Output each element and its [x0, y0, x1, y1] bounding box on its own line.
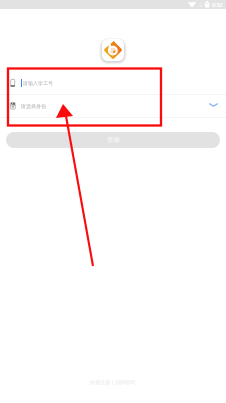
staticText: 请输入学工号 — [23, 80, 53, 86]
staticText: 9:52 — [212, 1, 223, 8]
staticText: 登录 — [107, 136, 120, 144]
button[interactable]: 登录 — [6, 132, 220, 148]
other: Expand — [208, 101, 219, 112]
button[interactable]: 请输入学工号 — [0, 72, 226, 94]
button[interactable]: 请选择身份 — [0, 95, 226, 117]
staticText: 请选择身份 — [21, 103, 46, 109]
staticText: 快速注册 | 找回密码 — [90, 379, 136, 386]
button[interactable]: 快速注册 | 找回密码 — [88, 377, 138, 388]
